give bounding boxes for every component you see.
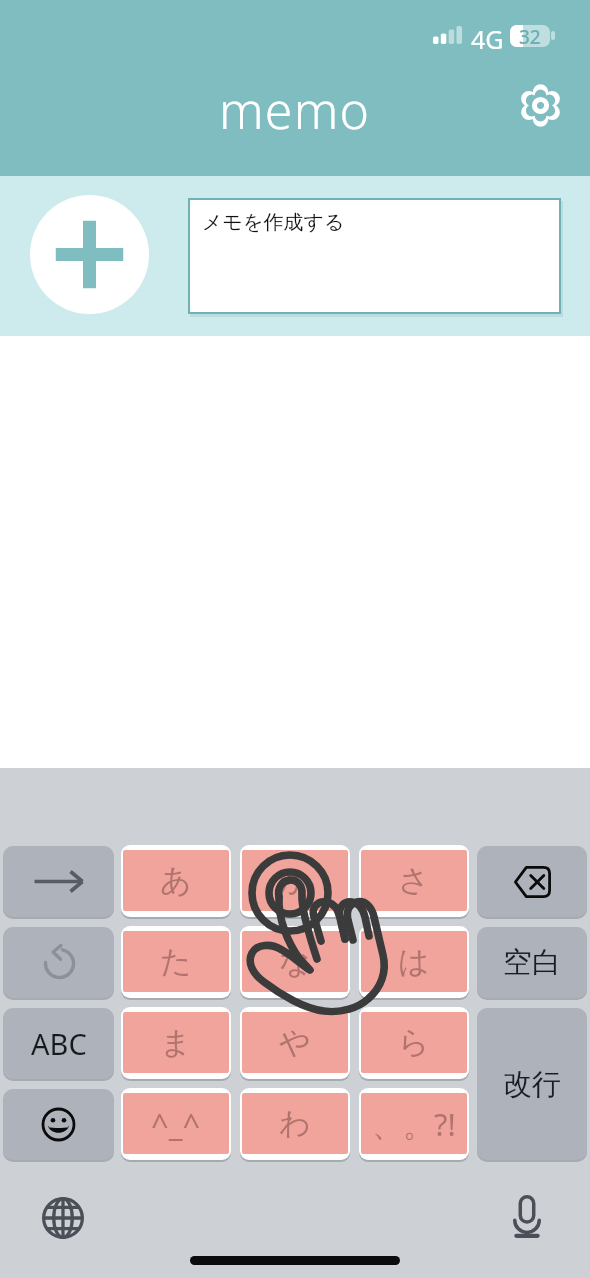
staticText: memo (219, 76, 371, 144)
button[interactable]: 空白 (477, 927, 587, 998)
button[interactable]: emoji (3, 1089, 114, 1160)
staticText: な (279, 942, 311, 981)
button[interactable]: か (240, 845, 350, 917)
staticText: か (279, 861, 311, 900)
button[interactable]: 、。?! (359, 1088, 469, 1160)
staticText: た (160, 942, 192, 981)
button[interactable]: ら (359, 1007, 469, 1079)
button[interactable]: は (359, 926, 469, 998)
staticText: さ (398, 861, 430, 900)
staticText: ABC (31, 1024, 87, 1063)
staticText: や (279, 1023, 311, 1062)
button[interactable]: あ (121, 845, 231, 917)
button[interactable]: ABC (3, 1008, 114, 1079)
button[interactable]: undo (3, 927, 114, 998)
staticText: は (398, 942, 430, 981)
staticText: 、。?! (372, 1103, 456, 1145)
staticText: ま (160, 1023, 192, 1062)
staticText: ^_^ (151, 1103, 201, 1145)
staticText: 空白 (503, 944, 561, 981)
staticText: 32 (519, 24, 541, 46)
button[interactable]: Settings (514, 79, 567, 132)
button[interactable]: さ (359, 845, 469, 917)
button[interactable]: Add memo (30, 195, 149, 314)
button[interactable]: ^_^ (121, 1088, 231, 1160)
staticText: わ (279, 1104, 311, 1143)
staticText: 改行 (503, 1066, 561, 1103)
button[interactable]: な (240, 926, 350, 998)
button[interactable]: ま (121, 1007, 231, 1079)
button[interactable]: 改行 (477, 1008, 587, 1160)
button[interactable]: た (121, 926, 231, 998)
button[interactable]: Change keyboard (33, 1188, 93, 1248)
staticText: あ (160, 861, 192, 900)
staticText: メモを作成する (202, 210, 345, 235)
button[interactable]: Delete (477, 846, 587, 917)
button[interactable]: メモを作成する (188, 198, 561, 314)
button[interactable]: わ (240, 1088, 350, 1160)
button[interactable]: や (240, 1007, 350, 1079)
button[interactable]: arrow (3, 846, 114, 917)
staticText: ら (398, 1023, 430, 1062)
staticText: 4G (471, 22, 504, 56)
button[interactable]: Voice input (505, 1187, 549, 1246)
